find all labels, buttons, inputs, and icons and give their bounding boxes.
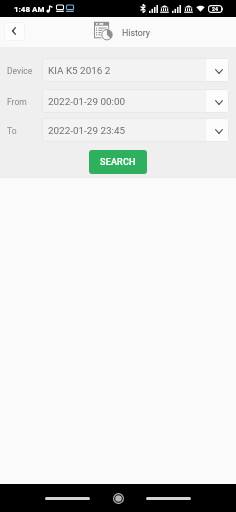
staticText: Device — [7, 66, 33, 76]
button[interactable]: 2022-01-29 00:00 — [42, 89, 229, 113]
button[interactable]: 2022-01-29 23:45 — [42, 118, 229, 142]
staticText: KIA K5 2016 2 — [48, 65, 111, 77]
button[interactable]: KIA K5 2016 2 — [42, 58, 229, 82]
button[interactable]: Recent apps — [45, 497, 90, 500]
button[interactable]: Home — [113, 493, 124, 504]
staticText: 2022-01-29 00:00 — [48, 96, 126, 108]
staticText: 1:48 AM — [14, 5, 45, 14]
button[interactable]: Open Device selector — [206, 58, 229, 82]
staticText: 24 — [212, 6, 218, 12]
button[interactable]: Back — [146, 497, 191, 500]
staticText: History — [122, 28, 150, 38]
staticText: 2022-01-29 23:45 — [48, 125, 126, 137]
staticText: From — [7, 97, 27, 107]
button[interactable]: SEARCH — [89, 150, 147, 174]
staticText: SEARCH — [100, 157, 136, 168]
button[interactable]: Open To selector — [206, 118, 229, 142]
button[interactable]: Open From selector — [206, 89, 229, 113]
staticText: To — [7, 126, 17, 136]
button[interactable]: Back — [4, 22, 25, 41]
